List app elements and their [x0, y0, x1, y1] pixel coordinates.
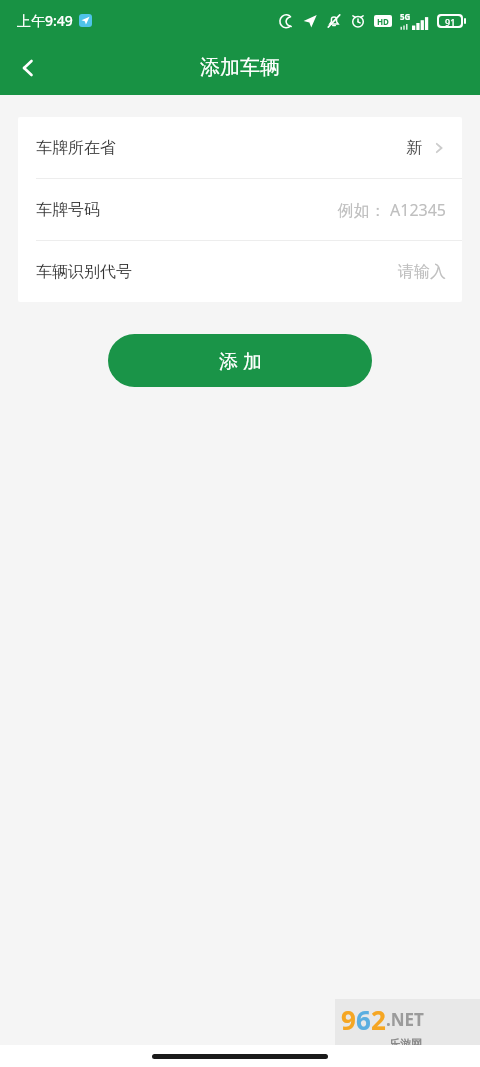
- button[interactable]: 车牌号码: [18, 179, 462, 240]
- staticText: .NET: [386, 1008, 424, 1031]
- staticText: HD: [377, 16, 389, 27]
- button[interactable]: 车牌所在省: [18, 117, 462, 178]
- staticText: 车牌号码: [36, 200, 100, 220]
- staticText: 新: [406, 138, 422, 158]
- staticText: 请输入: [398, 262, 446, 282]
- staticText: 例如： A12345: [337, 199, 446, 221]
- staticText: 2: [371, 1002, 386, 1037]
- staticText: 车辆识别代号: [36, 262, 132, 282]
- staticText: 车牌所在省: [36, 138, 116, 158]
- staticText: 5G: [400, 11, 411, 22]
- button[interactable]: Back: [0, 40, 56, 95]
- staticText: 添加车辆: [200, 55, 280, 80]
- button[interactable]: 添 加: [108, 334, 372, 387]
- staticText: 6: [356, 1002, 371, 1037]
- staticText: 乐游网: [389, 1037, 422, 1049]
- button[interactable]: 车辆识别代号: [18, 241, 462, 302]
- staticText: 添 加: [219, 348, 262, 374]
- staticText: 91: [445, 16, 456, 26]
- staticText: 上午9:49: [17, 11, 73, 30]
- staticText: 9: [341, 1002, 356, 1037]
